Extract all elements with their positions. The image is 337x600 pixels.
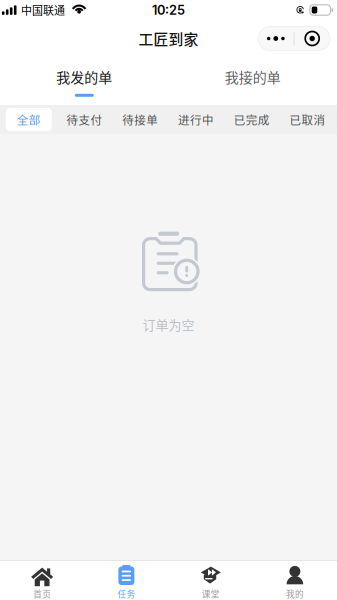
button[interactable]: 待支付: [61, 108, 107, 131]
button[interactable]: 待接单: [117, 108, 163, 131]
staticText: 工匠到家: [138, 28, 198, 49]
staticText: 我发的单: [56, 66, 112, 87]
staticText: 已完成: [234, 111, 270, 128]
staticText: 首页: [33, 587, 51, 600]
staticText: 我接的单: [225, 66, 281, 87]
staticText: 进行中: [178, 111, 214, 128]
button[interactable]: 任务: [84, 561, 168, 600]
button[interactable]: 首页: [0, 561, 84, 600]
button[interactable]: 进行中: [173, 108, 219, 131]
button[interactable]: 课堂: [168, 561, 253, 600]
staticText: 已取消: [289, 111, 325, 128]
staticText: 课堂: [202, 587, 220, 600]
button[interactable]: 全部: [6, 108, 52, 131]
button[interactable]: 已取消: [284, 108, 330, 131]
button[interactable]: 我接的单: [168, 57, 337, 105]
button[interactable]: 我的: [253, 561, 337, 600]
button[interactable]: 关闭: [294, 26, 330, 50]
button[interactable]: 更多: [258, 26, 294, 50]
staticText: 中国联通: [21, 2, 65, 18]
staticText: 10:25: [152, 2, 185, 18]
staticText: 我的: [286, 587, 304, 600]
button[interactable]: 我发的单: [0, 57, 168, 105]
button[interactable]: 已完成: [229, 108, 275, 131]
staticText: 待支付: [66, 111, 102, 128]
staticText: 全部: [17, 111, 41, 128]
staticText: 待接单: [122, 111, 158, 128]
staticText: 订单为空: [142, 315, 194, 334]
staticText: 任务: [117, 587, 135, 600]
